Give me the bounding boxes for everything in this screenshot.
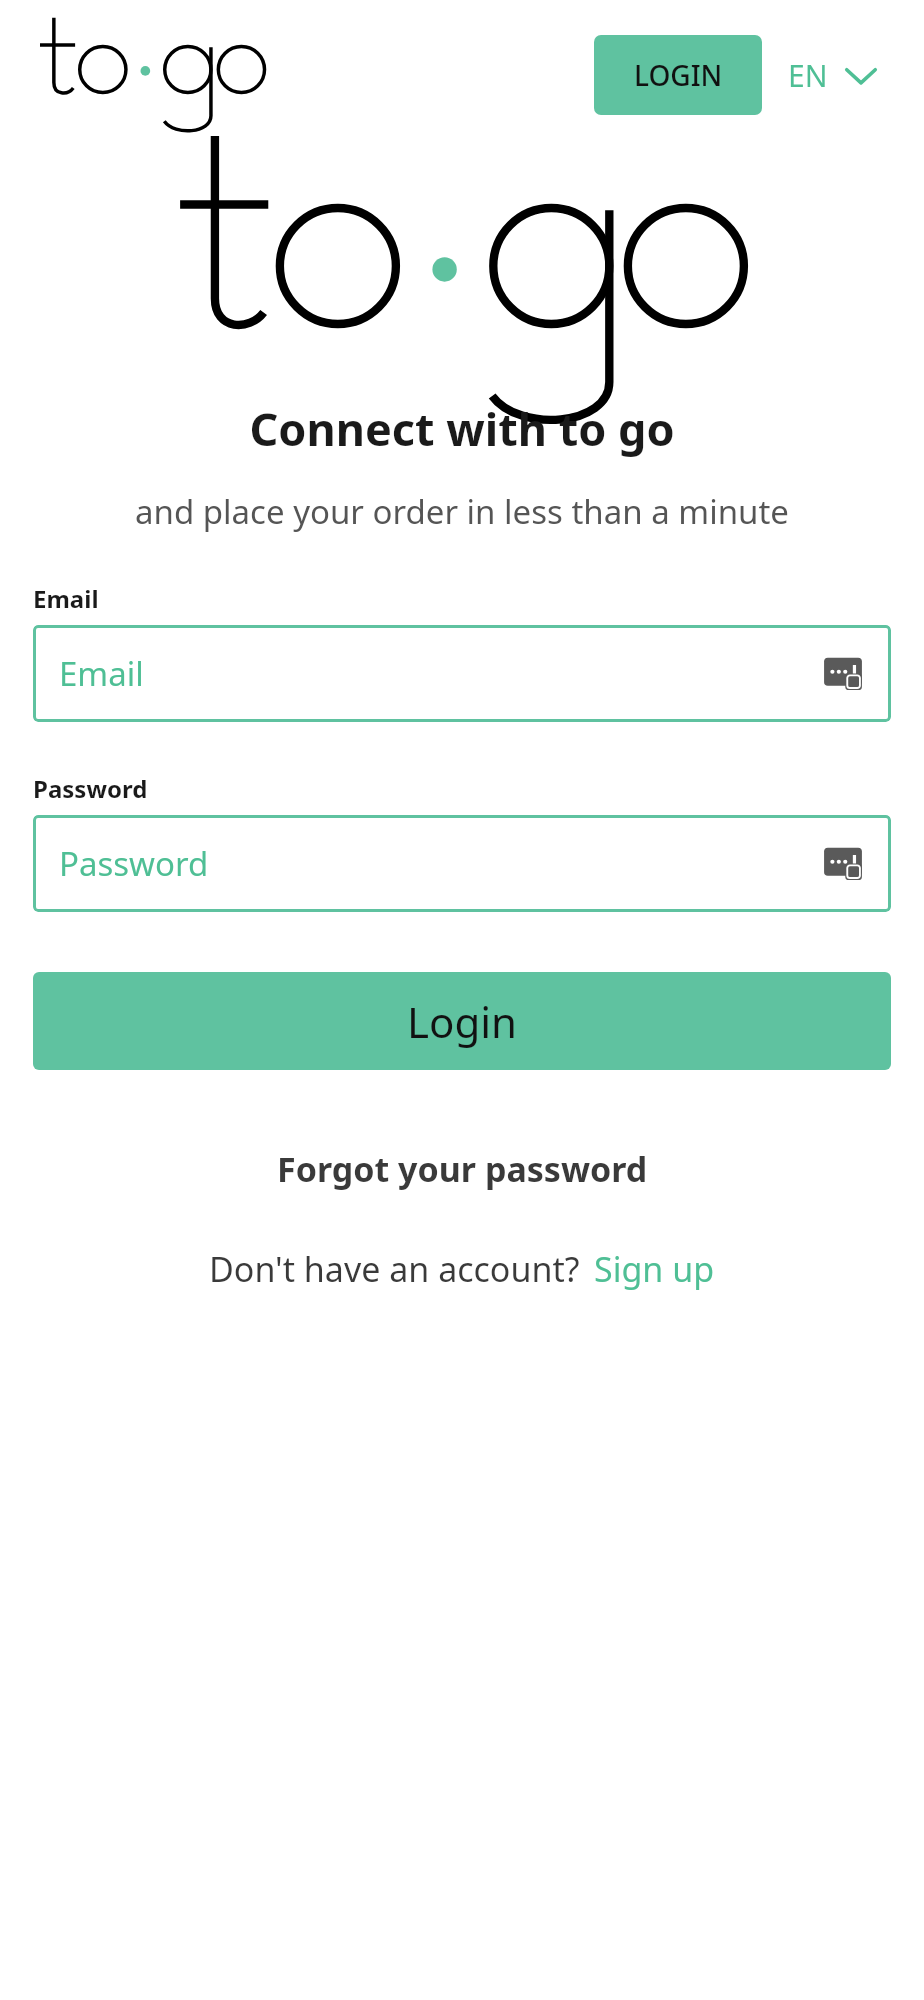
staticText: Don't have an account? [209,1246,580,1292]
button[interactable]: Forgot your password [33,1138,891,1200]
staticText: and place your order in less than a minu… [0,489,924,534]
staticText: Forgot your password [277,1146,648,1192]
staticText: Connect with to go [0,398,924,459]
staticText: EN [788,55,828,96]
staticText: Password [59,841,209,886]
staticText: Email [33,582,99,615]
button[interactable]: Password [33,815,891,912]
staticText: Login [407,993,518,1050]
button[interactable]: LOGIN [594,35,762,115]
staticText: LOGIN [634,56,723,94]
button[interactable]: Email [33,625,891,722]
button[interactable]: EN [770,41,894,110]
button[interactable]: Sign up [594,1246,715,1292]
other: Autofill Email [821,652,865,696]
other: Autofill Password [821,842,865,886]
staticText: Email [59,651,144,696]
button[interactable]: Login [33,972,891,1070]
staticText: Sign up [594,1246,715,1292]
button[interactable]: to go home [40,20,240,130]
staticText: Password [33,772,148,805]
